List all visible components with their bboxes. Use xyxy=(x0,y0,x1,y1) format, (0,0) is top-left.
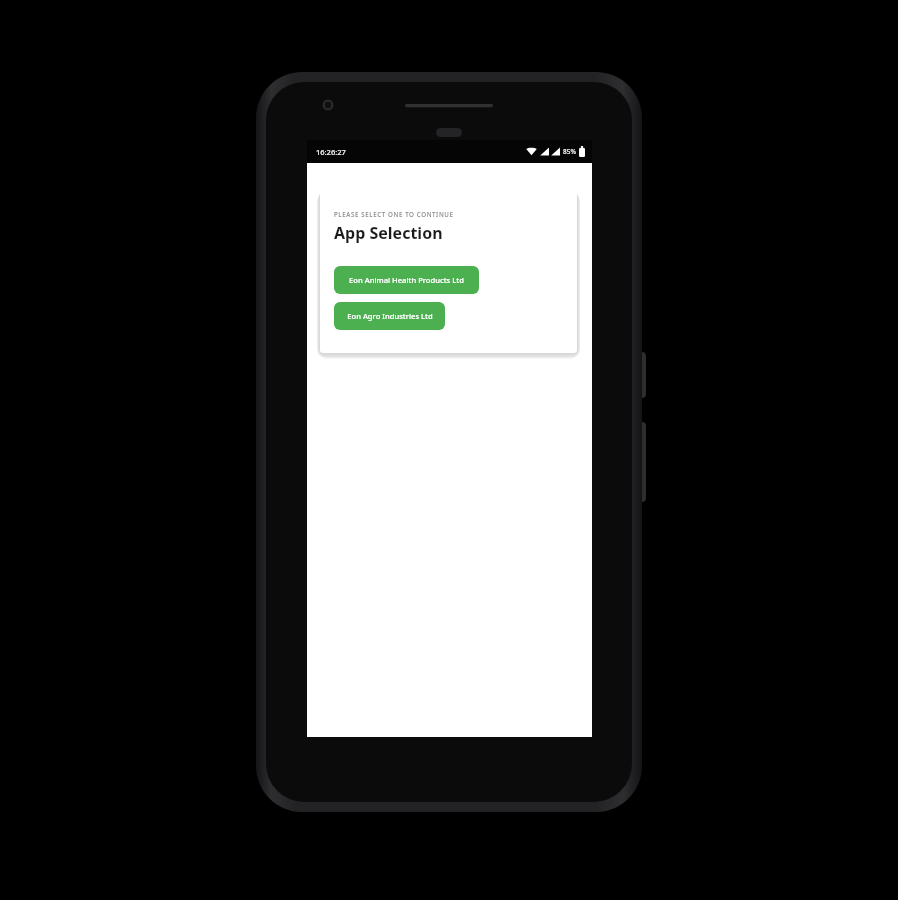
staticText: Eon Agro Industries Ltd xyxy=(347,311,433,321)
staticText: App Selection xyxy=(334,222,443,244)
staticText: 16:26:27 xyxy=(316,147,346,157)
button[interactable]: Eon Animal Health Products Ltd xyxy=(334,266,479,294)
staticText: PLEASE SELECT ONE TO CONTINUE xyxy=(334,210,454,218)
button[interactable]: Eon Agro Industries Ltd xyxy=(334,302,445,330)
staticText: 85% xyxy=(563,147,576,156)
staticText: Eon Animal Health Products Ltd xyxy=(349,275,464,285)
